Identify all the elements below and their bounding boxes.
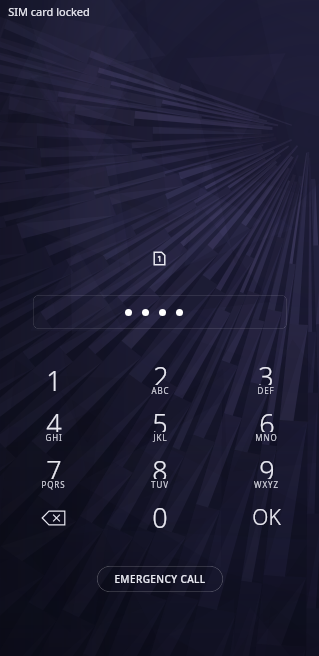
button[interactable] [33,295,287,329]
button[interactable]: 9 [213,447,319,494]
staticText: 1 [46,362,62,392]
staticText: 0 [152,499,168,536]
staticText: ABC [151,385,170,396]
staticText: EMERGENCY CALL [114,572,206,586]
staticText: 6 [259,405,275,432]
staticText: JKL [153,432,168,443]
staticText: 2 [153,358,169,385]
button[interactable]: Backspace [0,494,107,541]
button[interactable]: EMERGENCY CALL [97,566,223,592]
staticText: DEF [257,385,275,396]
button[interactable]: OK [213,494,319,541]
staticText: 3 [258,358,274,385]
button[interactable]: 5 [107,400,213,447]
staticText: 9 [259,452,275,479]
staticText: MNO [255,432,278,443]
button[interactable]: 2 [107,353,213,400]
button[interactable]: 8 [107,447,213,494]
button[interactable]: 6 [213,400,319,447]
other: SIM card 1 [153,251,166,266]
staticText: PQRS [41,479,66,490]
button[interactable]: 1 [0,353,107,400]
staticText: 4 [46,405,62,432]
button[interactable]: 4 [0,400,107,447]
staticText: GHI [45,432,63,443]
staticText: 8 [152,452,168,479]
staticText: TUV [151,479,169,490]
staticText: 5 [152,405,168,432]
staticText: OK [252,503,281,532]
button[interactable]: 0 [107,494,213,541]
staticText: SIM card locked [8,4,90,19]
staticText: 7 [46,452,62,479]
button[interactable]: 3 [213,353,319,400]
button[interactable]: 7 [0,447,107,494]
staticText: WXYZ [254,479,279,490]
